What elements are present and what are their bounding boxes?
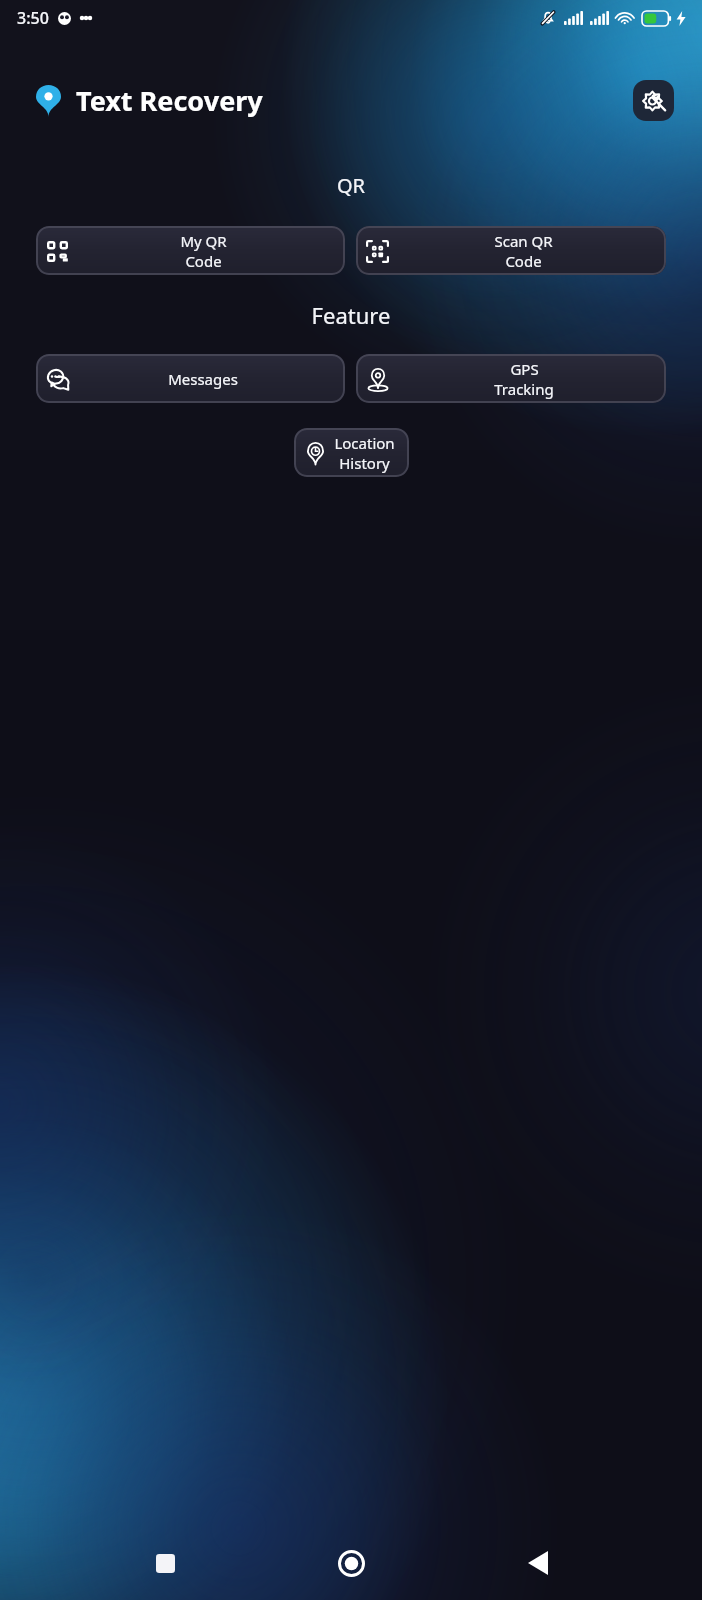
staticText: Tracking — [494, 379, 554, 399]
button[interactable]: Scan QR — [356, 226, 666, 275]
staticText: Text Recovery — [76, 82, 263, 119]
button[interactable]: Settings — [633, 80, 674, 121]
button[interactable]: Recent apps — [143, 1541, 187, 1585]
staticText: Location — [334, 433, 395, 453]
button[interactable]: Back — [516, 1541, 560, 1585]
staticText: QR — [0, 172, 702, 199]
staticText: Code — [185, 251, 222, 271]
button[interactable]: Location — [294, 428, 409, 477]
button[interactable]: GPS — [356, 354, 666, 403]
staticText: Feature — [0, 300, 702, 330]
staticText: Scan QR — [494, 231, 553, 251]
button[interactable]: My QR — [36, 226, 345, 275]
button[interactable]: Messages — [36, 354, 345, 403]
staticText: GPS — [510, 359, 539, 379]
staticText: Code — [505, 251, 542, 271]
staticText: 3:50 — [17, 7, 49, 29]
staticText: History — [339, 453, 390, 473]
button[interactable]: Home — [329, 1541, 373, 1585]
staticText: My QR — [180, 231, 227, 251]
staticText: Messages — [168, 369, 238, 389]
